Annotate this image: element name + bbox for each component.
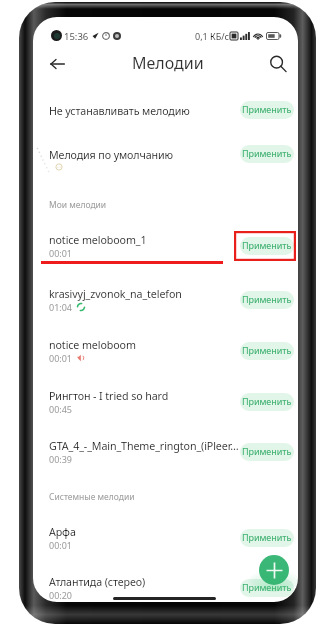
button[interactable]: notice meloboom xyxy=(33,330,298,372)
staticText: 00:45 xyxy=(49,403,73,415)
staticText: 00:39 xyxy=(49,453,73,465)
button[interactable]: Применить xyxy=(240,145,294,163)
staticText: Применить xyxy=(242,581,292,593)
staticText: Применить xyxy=(242,445,292,457)
staticText: GTA_4_-_Main_Theme_rington_(iPleer.... xyxy=(49,439,239,454)
staticText: Применить xyxy=(242,293,292,305)
button[interactable]: Рингтон - I tried so hard xyxy=(33,381,298,423)
staticText: Рингтон - I tried so hard xyxy=(49,389,239,404)
button[interactable]: Применить xyxy=(240,101,294,119)
button[interactable]: Search xyxy=(264,50,291,77)
staticText: 0,1 КБ/c xyxy=(195,30,229,41)
staticText: Атлантида (стерео) xyxy=(49,575,239,590)
staticText: notice meloboom xyxy=(49,338,239,353)
staticText: Применить xyxy=(242,395,292,407)
staticText: Применить xyxy=(242,239,292,251)
staticText: 00:01 xyxy=(49,247,73,259)
staticText: notice meloboom_1 xyxy=(49,233,239,248)
button[interactable]: Применить xyxy=(240,579,294,597)
staticText: Не устанавливать мелодию xyxy=(49,104,190,119)
staticText: krasivyj_zvonok_na_telefon xyxy=(49,287,239,302)
staticText: Мелодии xyxy=(132,52,204,74)
button[interactable]: Применить xyxy=(240,529,294,547)
button[interactable]: Применить xyxy=(240,342,294,360)
staticText: Применить xyxy=(242,531,292,543)
button[interactable]: Применить xyxy=(240,291,294,309)
button[interactable]: Back xyxy=(44,50,71,77)
button[interactable]: Атлантида (стерео) xyxy=(33,567,298,602)
button[interactable]: Применить xyxy=(240,393,294,411)
staticText: Применить xyxy=(242,344,292,356)
staticText: Мои мелодии xyxy=(49,199,107,211)
button[interactable]: Мелодия по умолчанию xyxy=(33,137,298,177)
staticText: Мелодия по умолчанию xyxy=(49,148,174,163)
staticText: Применить xyxy=(242,103,292,115)
button[interactable]: krasivyj_zvonok_na_telefon xyxy=(33,279,298,321)
staticText: 15:36 xyxy=(64,30,89,41)
staticText: 01:04 xyxy=(49,301,73,313)
staticText: Применить xyxy=(242,147,292,159)
staticText: 00:20 xyxy=(49,589,73,601)
staticText: Системные мелодии xyxy=(49,491,135,503)
button[interactable]: Арфа xyxy=(33,517,298,559)
button[interactable]: Применить xyxy=(240,443,294,461)
button[interactable]: notice meloboom_1 xyxy=(33,225,298,267)
button[interactable]: Применить xyxy=(240,237,294,255)
staticText: Арфа xyxy=(49,525,239,540)
button[interactable]: Add ringtone xyxy=(259,555,289,585)
button[interactable]: GTA_4_-_Main_Theme_rington_(iPleer.... xyxy=(33,431,298,473)
staticText: 00:01 xyxy=(49,352,73,364)
staticText: 00:01 xyxy=(49,539,73,551)
button[interactable]: Не устанавливать мелодию xyxy=(33,93,298,133)
